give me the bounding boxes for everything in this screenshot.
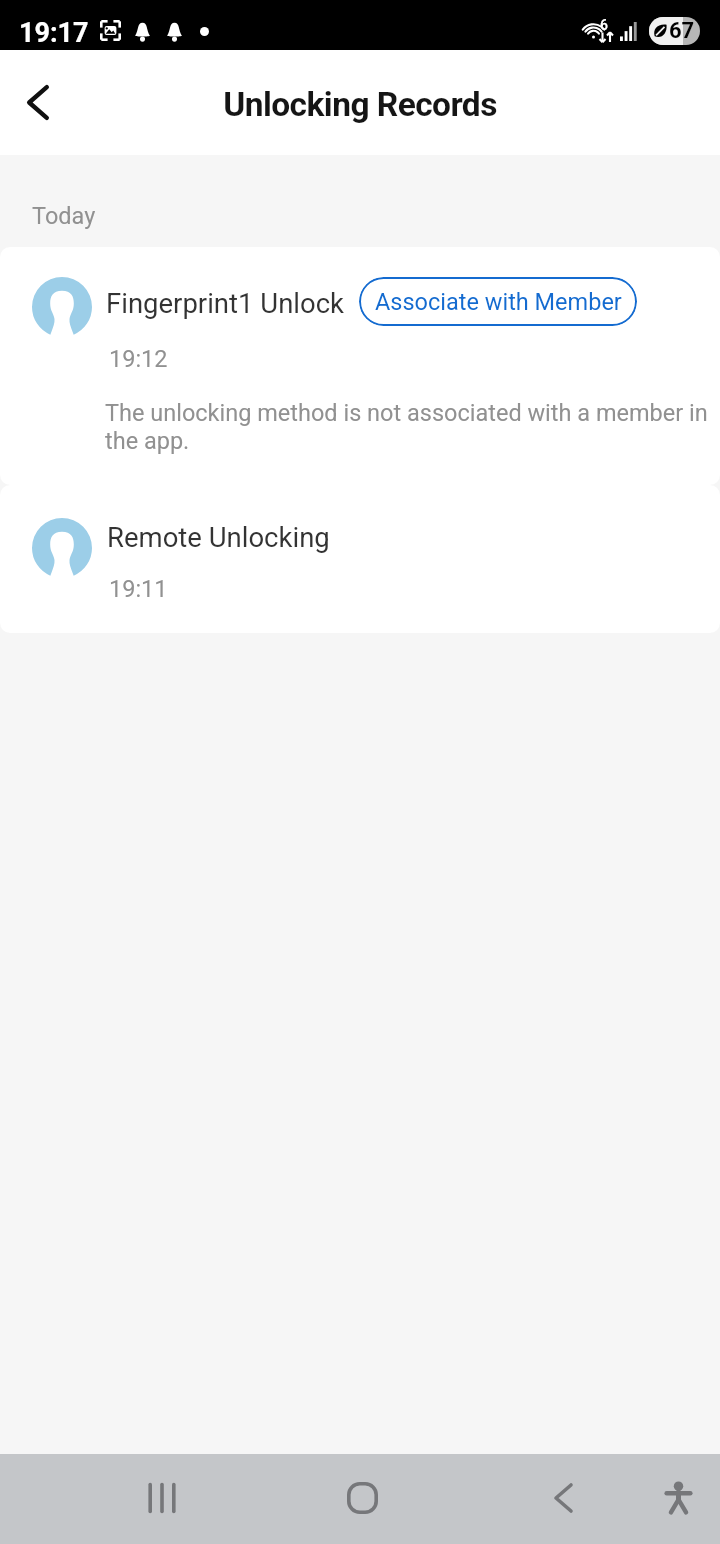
staticText: 19:17 <box>19 17 89 49</box>
button[interactable]: Back <box>0 64 76 142</box>
staticText: 19:11 <box>109 575 168 603</box>
staticText: 19:12 <box>109 345 168 373</box>
button[interactable]: Remote Unlocking <box>0 485 720 633</box>
button[interactable]: Associate with Member <box>359 277 637 326</box>
staticText: Fingerprint1 Unlock <box>106 287 345 319</box>
staticText: Remote Unlocking <box>107 521 330 553</box>
button[interactable]: Recent apps <box>121 1457 202 1538</box>
button[interactable]: Fingerprint1 Unlock <box>0 247 720 485</box>
staticText: 6 <box>600 17 608 33</box>
button[interactable]: Back <box>523 1457 604 1538</box>
staticText: Today <box>32 202 96 230</box>
staticText: 67 <box>669 18 695 44</box>
staticText: The unlocking method is not associated w… <box>105 399 713 455</box>
button[interactable]: Accessibility <box>638 1457 719 1538</box>
staticText: Unlocking Records <box>0 85 720 155</box>
button[interactable]: Home <box>322 1457 403 1538</box>
staticText: Associate with Member <box>375 288 622 316</box>
